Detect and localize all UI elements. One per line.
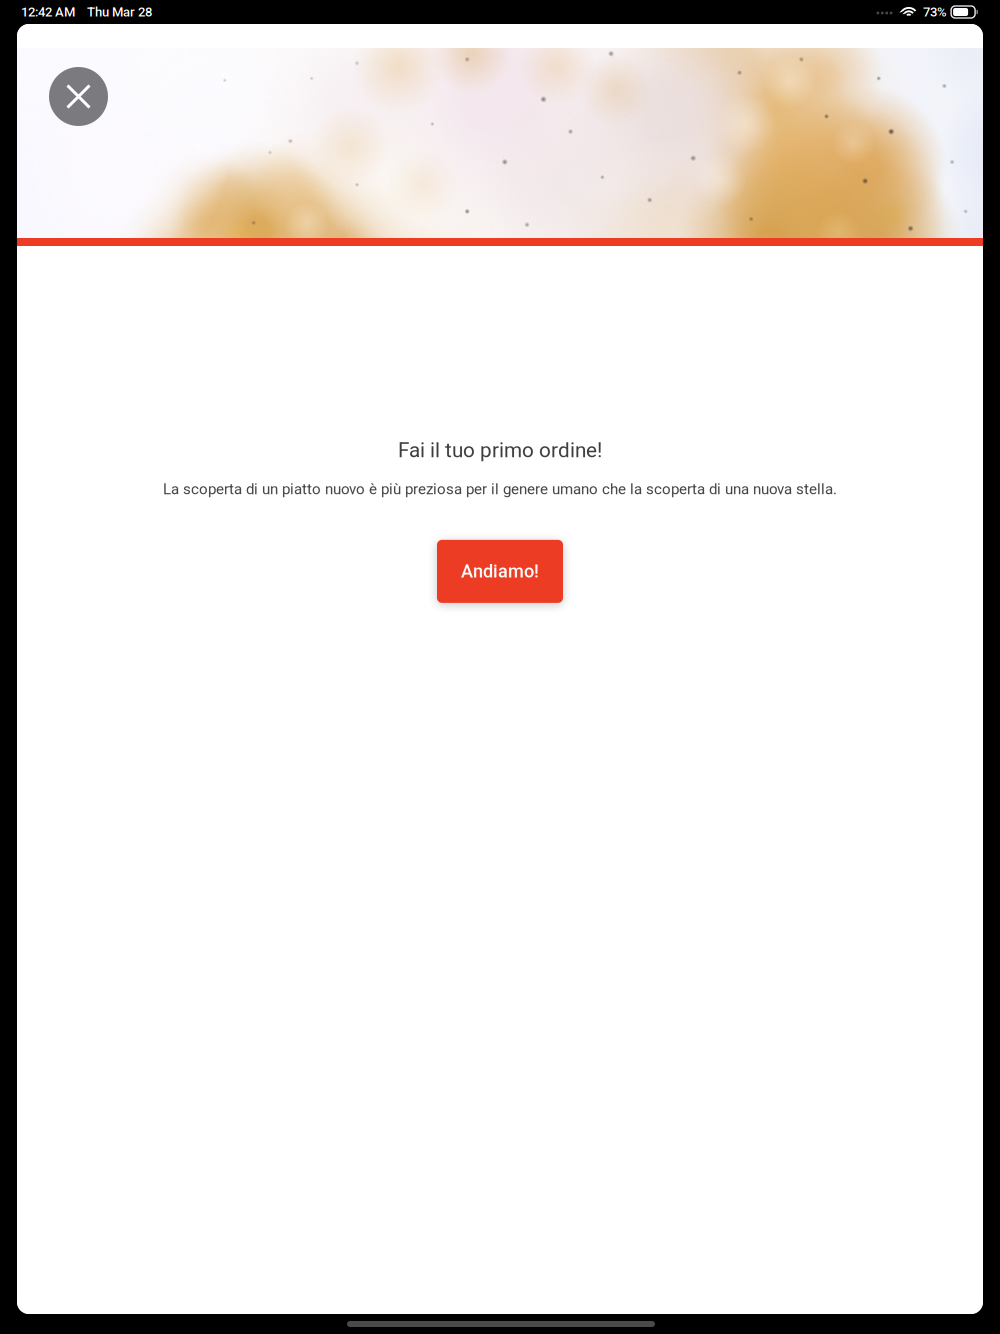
staticText: La scoperta di un piatto nuovo è più pre… [163, 480, 837, 498]
staticText: Thu Mar 28 [87, 4, 152, 20]
staticText: 73% [923, 4, 947, 20]
staticText: Fai il tuo primo ordine! [398, 438, 602, 462]
button[interactable]: Andiamo! [437, 540, 563, 603]
button[interactable]: Close [49, 67, 108, 126]
staticText: 12:42 AM [21, 4, 75, 20]
staticText: Andiamo! [461, 561, 539, 582]
